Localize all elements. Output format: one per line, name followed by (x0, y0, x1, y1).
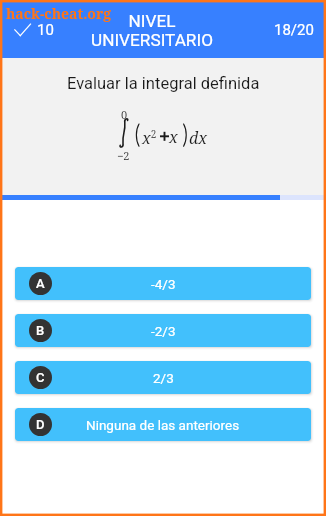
staticText: -4/3 (151, 276, 176, 292)
staticText: 18/20 (274, 21, 314, 39)
button[interactable]: -4/3 (15, 267, 311, 300)
staticText: dx (189, 127, 208, 149)
staticText: x2 (142, 127, 157, 149)
staticText: 10 (37, 21, 54, 39)
staticText: Ninguna de las anteriores (86, 417, 240, 433)
staticText: hack-cheat.org (6, 4, 112, 23)
staticText: -2/3 (151, 323, 176, 339)
staticText: A (36, 276, 45, 291)
button[interactable]: Correct answers (14, 21, 54, 39)
staticText: NIVEL UNIVERSITARIO (91, 11, 213, 50)
button[interactable]: Ninguna de las anteriores (15, 408, 311, 441)
staticText: −2 (117, 148, 130, 163)
staticText: D (36, 417, 45, 432)
staticText: Evaluar la integral definida (67, 74, 260, 93)
other: Correct answers (14, 22, 31, 39)
button[interactable]: 2/3 (15, 361, 311, 394)
staticText: 2/3 (153, 370, 174, 386)
staticText: B (36, 323, 45, 338)
staticText: x (169, 126, 178, 148)
staticText: C (36, 370, 45, 385)
button[interactable]: -2/3 (15, 314, 311, 347)
staticText: 0 (121, 107, 128, 122)
